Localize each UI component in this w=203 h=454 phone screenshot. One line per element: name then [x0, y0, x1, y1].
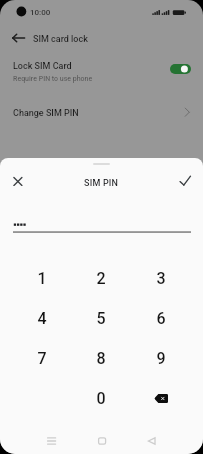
staticText: 9 — [156, 349, 166, 368]
button[interactable]: 2 — [71, 258, 131, 298]
button[interactable]: 1 — [12, 258, 71, 298]
staticText: Require PIN to use phone — [13, 75, 93, 83]
button[interactable]: 6 — [131, 298, 191, 338]
button[interactable]: 5 — [71, 298, 131, 338]
button[interactable]: Lock SIM Card — [0, 50, 203, 90]
staticText: Change SIM PIN — [13, 108, 79, 119]
staticText: 2 — [96, 269, 106, 288]
button[interactable]: 7 — [12, 338, 71, 378]
staticText: 10:00 — [30, 8, 51, 17]
staticText: SIM PIN — [84, 178, 119, 189]
staticText: 5 — [96, 309, 106, 328]
button[interactable]: Delete — [131, 378, 191, 418]
staticText: 6 — [156, 309, 166, 328]
button[interactable]: 0 — [71, 378, 131, 418]
button[interactable]: Close — [8, 171, 28, 191]
staticText: 3 — [156, 269, 166, 288]
button[interactable]: 9 — [131, 338, 191, 378]
button[interactable]: Change SIM PIN — [0, 95, 203, 125]
button[interactable]: Recent apps — [0, 428, 67, 454]
button[interactable]: Home — [68, 428, 135, 454]
staticText: 8 — [96, 349, 106, 368]
button[interactable]: Confirm — [175, 171, 195, 191]
button[interactable]: 4 — [12, 298, 71, 338]
button[interactable]: Back — [7, 26, 30, 50]
other: Delete — [154, 394, 168, 403]
button[interactable]: Lock SIM Card switch — [170, 64, 191, 74]
staticText: 7 — [37, 349, 47, 368]
button[interactable]: Back — [136, 428, 203, 454]
staticText: Lock SIM Card — [13, 61, 72, 72]
staticText: 1 — [37, 269, 47, 288]
button[interactable]: 3 — [131, 258, 191, 298]
staticText: 4 — [37, 309, 47, 328]
staticText: 0 — [96, 389, 106, 408]
staticText: SIM card lock — [33, 34, 88, 45]
button[interactable]: 8 — [71, 338, 131, 378]
